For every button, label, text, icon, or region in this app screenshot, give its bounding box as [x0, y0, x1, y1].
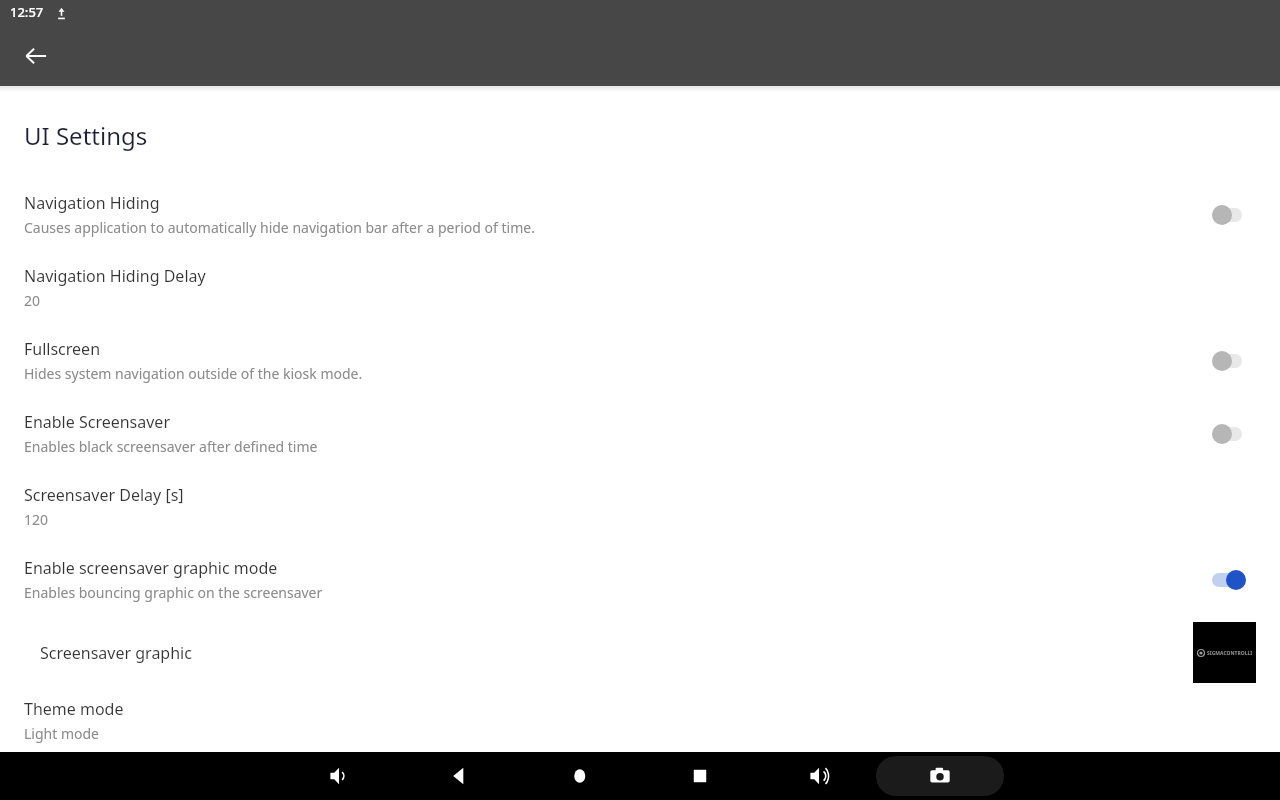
button[interactable]: Toggle off [1208, 416, 1256, 452]
button[interactable]: Theme mode [0, 689, 1280, 752]
staticText: SIGMACONTROLLI [1207, 650, 1253, 657]
button[interactable]: Recent apps [676, 752, 724, 800]
staticText: Enable screensaver graphic mode [24, 557, 278, 579]
button[interactable]: Back [435, 752, 483, 800]
button[interactable]: Navigation Hiding Delay [0, 251, 1280, 324]
staticText: 12:57 [10, 3, 44, 21]
staticText: Enables bouncing graphic on the screensa… [24, 583, 323, 602]
staticText: Screensaver Delay [s] [24, 484, 184, 506]
staticText: Fullscreen [24, 338, 101, 360]
staticText: Hides system navigation outside of the k… [24, 364, 363, 383]
staticText: Screensaver graphic [40, 642, 1193, 664]
button[interactable]: Screensaver Delay [s] [0, 470, 1280, 543]
button[interactable]: Back [12, 32, 60, 80]
button[interactable]: Enable screensaver graphic mode [0, 543, 1280, 616]
staticText: Theme mode [24, 698, 124, 720]
staticText: Navigation Hiding [24, 192, 160, 214]
button[interactable]: Enable Screensaver [0, 397, 1280, 470]
button[interactable]: Camera [876, 756, 1004, 796]
staticText: 120 [24, 510, 49, 529]
staticText: Enable Screensaver [24, 411, 171, 433]
staticText: Causes application to automatically hide… [24, 218, 535, 237]
staticText: Enables black screensaver after defined … [24, 437, 318, 456]
staticText: Light mode [24, 724, 99, 743]
button[interactable]: Toggle on [1208, 562, 1256, 598]
button[interactable]: Volume up [796, 752, 844, 800]
button[interactable]: Toggle off [1208, 197, 1256, 233]
button[interactable]: Navigation Hiding [0, 178, 1280, 251]
button[interactable]: Volume down [316, 752, 364, 800]
staticText: UI Settings [24, 119, 148, 152]
button[interactable]: Screensaver graphic [0, 616, 1280, 689]
button[interactable]: Fullscreen [0, 324, 1280, 397]
staticText: 20 [24, 291, 41, 310]
button[interactable]: Screensaver graphic preview [1193, 622, 1256, 683]
staticText: Navigation Hiding Delay [24, 265, 206, 287]
button[interactable]: Home [556, 752, 604, 800]
button[interactable]: Toggle off [1208, 343, 1256, 379]
